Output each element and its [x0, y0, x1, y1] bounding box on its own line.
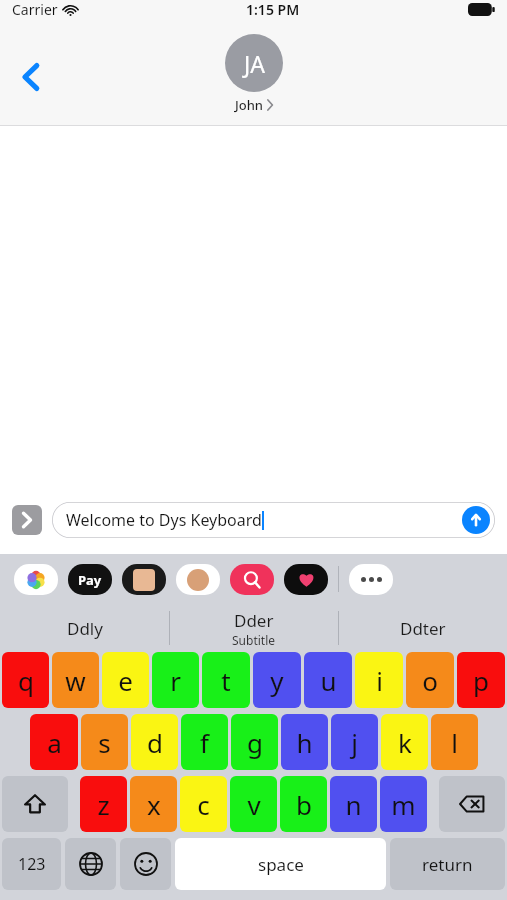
button[interactable]: f	[181, 714, 228, 770]
staticText: Ddter	[400, 617, 446, 640]
button[interactable]: x	[130, 776, 177, 832]
staticText: e	[118, 663, 133, 698]
staticText: k	[398, 725, 412, 760]
staticText: h	[296, 725, 313, 760]
button[interactable]: p	[457, 652, 505, 708]
button[interactable]: j	[331, 714, 378, 770]
button[interactable]: Send	[462, 506, 490, 534]
button[interactable]: 123	[2, 838, 61, 890]
button[interactable]: App	[176, 564, 220, 595]
staticText: JA	[244, 48, 265, 79]
staticText: y	[270, 663, 284, 698]
button[interactable]: Emoji	[120, 838, 171, 890]
staticText: John	[235, 96, 264, 114]
button[interactable]: return	[390, 838, 505, 890]
staticText: Dder	[234, 609, 274, 632]
staticText: u	[320, 663, 337, 698]
button[interactable]: v	[230, 776, 277, 832]
button[interactable]: c	[180, 776, 227, 832]
staticText: m	[391, 787, 416, 822]
staticText: g	[247, 725, 263, 760]
staticText: 123	[18, 853, 46, 875]
button[interactable]: k	[381, 714, 428, 770]
staticText: Subtitle	[232, 632, 276, 648]
button[interactable]: a	[30, 714, 78, 770]
staticText: space	[258, 853, 304, 876]
button[interactable]: Back	[14, 60, 48, 94]
staticText: a	[47, 725, 62, 760]
staticText: b	[296, 787, 312, 822]
button[interactable]: u	[304, 652, 352, 708]
staticText: Pay	[78, 571, 102, 589]
button[interactable]: Ddly	[0, 617, 169, 640]
staticText: j	[351, 725, 358, 760]
staticText: r	[170, 663, 181, 698]
button[interactable]: q	[2, 652, 49, 708]
button[interactable]: JA	[225, 34, 283, 114]
button[interactable]: App	[230, 564, 274, 595]
staticText: v	[247, 787, 261, 822]
button[interactable]: b	[280, 776, 327, 832]
button[interactable]: Ddter	[339, 617, 507, 640]
button[interactable]: Shift	[2, 776, 68, 832]
staticText: l	[451, 725, 458, 760]
button[interactable]: y	[253, 652, 301, 708]
staticText: p	[473, 663, 489, 698]
staticText: o	[422, 663, 438, 698]
button[interactable]: z	[80, 776, 127, 832]
staticText: return	[422, 853, 473, 876]
staticText: f	[200, 725, 209, 760]
button[interactable]: g	[231, 714, 278, 770]
button[interactable]: App	[68, 564, 112, 595]
button[interactable]: App	[284, 564, 328, 595]
button[interactable]: Dder	[170, 609, 338, 648]
button[interactable]: i	[355, 652, 403, 708]
button[interactable]: Welcome to Dys Keyboard	[52, 502, 495, 538]
button[interactable]: App	[14, 564, 58, 595]
staticText: Welcome to Dys Keyboard	[66, 509, 262, 531]
staticText: x	[147, 787, 161, 822]
staticText: n	[345, 787, 362, 822]
button[interactable]: o	[406, 652, 454, 708]
staticText: c	[197, 787, 210, 822]
button[interactable]: space	[175, 838, 386, 890]
staticText: t	[221, 663, 231, 698]
button[interactable]: t	[202, 652, 250, 708]
staticText: d	[147, 725, 163, 760]
staticText: 1:15 PM	[246, 0, 300, 19]
button[interactable]: Switch keyboard	[65, 838, 116, 890]
button[interactable]: l	[431, 714, 478, 770]
button[interactable]: App	[122, 564, 166, 595]
button[interactable]: m	[380, 776, 427, 832]
staticText: i	[376, 663, 383, 698]
button[interactable]: d	[131, 714, 178, 770]
button[interactable]: r	[152, 652, 199, 708]
button[interactable]: Delete	[439, 776, 505, 832]
staticText: q	[18, 663, 34, 698]
staticText: Carrier	[12, 0, 58, 19]
staticText: Ddly	[67, 617, 103, 640]
staticText: w	[65, 663, 86, 698]
button[interactable]: s	[81, 714, 128, 770]
staticText: s	[98, 725, 111, 760]
button[interactable]: h	[281, 714, 328, 770]
button[interactable]: n	[330, 776, 377, 832]
staticText: z	[97, 787, 110, 822]
button[interactable]: App	[349, 564, 393, 595]
button[interactable]: Expand apps	[12, 505, 42, 535]
button[interactable]: e	[102, 652, 149, 708]
button[interactable]: w	[52, 652, 99, 708]
